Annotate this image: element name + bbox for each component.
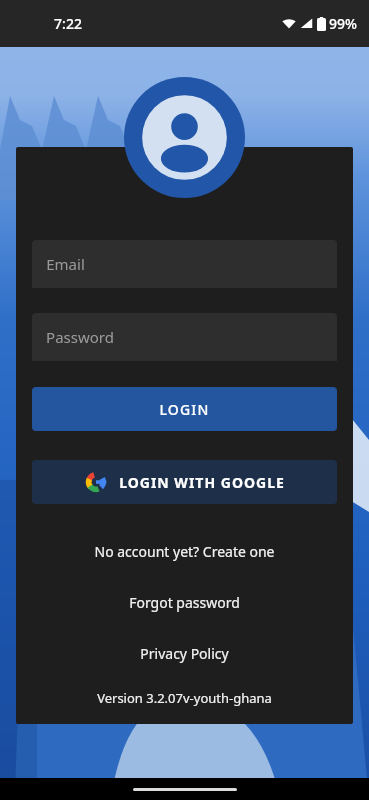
staticText: LOGIN	[159, 400, 210, 419]
button[interactable]: Email	[32, 240, 337, 288]
button[interactable]: Privacy Policy	[32, 644, 337, 663]
button[interactable]: LOGIN	[32, 387, 337, 431]
other: Profile avatar	[124, 77, 245, 198]
staticText: Privacy Policy	[140, 644, 229, 663]
button[interactable]: Password	[32, 313, 337, 361]
staticText: Version 3.2.07v-youth-ghana	[97, 689, 272, 707]
staticText: 99%	[329, 14, 357, 33]
button[interactable]: Forgot password	[32, 593, 337, 612]
staticText: No account yet? Create one	[94, 542, 275, 561]
staticText: Password	[46, 327, 114, 347]
staticText: Forgot password	[129, 593, 240, 612]
staticText: 7:22	[54, 14, 82, 33]
button[interactable]: LOGIN WITH GOOGLE	[32, 460, 337, 504]
staticText: Email	[46, 254, 85, 274]
button[interactable]: No account yet? Create one	[32, 542, 337, 561]
staticText: LOGIN WITH GOOGLE	[119, 473, 285, 492]
